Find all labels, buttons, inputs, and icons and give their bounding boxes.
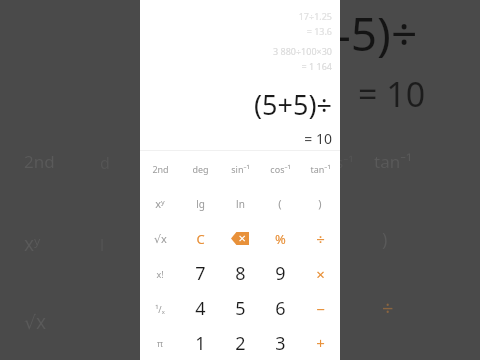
- staticText: 17÷1.25: [298, 10, 332, 22]
- button[interactable]: %: [260, 221, 300, 256]
- staticText: -5)÷: [336, 2, 418, 65]
- button[interactable]: √x: [140, 221, 180, 256]
- staticText: ×: [316, 264, 325, 284]
- staticText: +: [316, 333, 325, 353]
- staticText: −: [316, 299, 325, 319]
- button[interactable]: tan⁻¹: [300, 151, 340, 186]
- button[interactable]: ¹/ₓ: [140, 291, 180, 326]
- button[interactable]: 2nd: [140, 151, 180, 186]
- staticText: 8: [235, 261, 246, 286]
- button[interactable]: xʸ: [140, 186, 180, 221]
- staticText: = 1 164: [301, 60, 332, 72]
- staticText: 3 880÷100×30: [273, 45, 332, 57]
- staticText: (: [278, 196, 282, 211]
- button[interactable]: cos⁻¹: [260, 151, 300, 186]
- button[interactable]: 5: [220, 291, 260, 326]
- staticText: cos⁻¹: [270, 163, 291, 175]
- button[interactable]: ×: [300, 256, 340, 291]
- staticText: xʸ: [24, 231, 41, 257]
- staticText: = 10: [358, 71, 426, 117]
- staticText: ¹/ₓ: [155, 303, 165, 315]
- button[interactable]: x!: [140, 256, 180, 291]
- staticText: ÷: [316, 229, 325, 249]
- button[interactable]: ln: [220, 186, 260, 221]
- button[interactable]: (: [260, 186, 300, 221]
- staticText: C: [196, 230, 205, 248]
- staticText: 2nd: [24, 150, 55, 173]
- button[interactable]: 9: [260, 256, 300, 291]
- staticText: 6: [275, 296, 286, 321]
- button[interactable]: 2: [220, 326, 260, 360]
- staticText: 3: [275, 331, 286, 356]
- staticText: ): [382, 227, 388, 252]
- button[interactable]: C: [180, 221, 220, 256]
- staticText: (5+5)÷: [254, 86, 332, 123]
- staticText: √x: [24, 309, 47, 335]
- staticText: = 13.6: [306, 25, 332, 37]
- staticText: d: [100, 152, 110, 174]
- staticText: lg: [196, 197, 205, 211]
- staticText: 1: [195, 331, 206, 356]
- staticText: 5: [235, 296, 246, 321]
- staticText: s⁻¹: [336, 152, 354, 172]
- staticText: ÷: [382, 294, 394, 321]
- button[interactable]: 1: [180, 326, 220, 360]
- button[interactable]: 3: [260, 326, 300, 360]
- button[interactable]: π: [140, 326, 180, 360]
- staticText: 7: [195, 261, 206, 286]
- button[interactable]: −: [300, 291, 340, 326]
- button[interactable]: 8: [220, 256, 260, 291]
- button[interactable]: 6: [260, 291, 300, 326]
- staticText: %: [275, 230, 286, 248]
- staticText: 4: [195, 296, 206, 321]
- staticText: 2: [235, 331, 246, 356]
- staticText: 2nd: [152, 163, 169, 175]
- button[interactable]: ): [300, 186, 340, 221]
- staticText: 9: [275, 261, 286, 286]
- staticText: = 10: [304, 129, 332, 148]
- staticText: tan⁻¹: [374, 150, 412, 173]
- button[interactable]: Backspace: [220, 221, 260, 256]
- button[interactable]: sin⁻¹: [220, 151, 260, 186]
- button[interactable]: 4: [180, 291, 220, 326]
- button[interactable]: deg: [180, 151, 220, 186]
- staticText: tan⁻¹: [310, 163, 331, 175]
- button[interactable]: ÷: [300, 221, 340, 256]
- staticText: deg: [192, 163, 209, 175]
- staticText: x!: [156, 268, 164, 280]
- button[interactable]: lg: [180, 186, 220, 221]
- staticText: π: [157, 337, 163, 349]
- staticText: ): [318, 196, 322, 211]
- staticText: √x: [154, 231, 167, 246]
- staticText: ln: [236, 197, 245, 211]
- staticText: sin⁻¹: [231, 163, 250, 175]
- staticText: xʸ: [155, 196, 165, 211]
- button[interactable]: 7: [180, 256, 220, 291]
- button[interactable]: +: [300, 326, 340, 360]
